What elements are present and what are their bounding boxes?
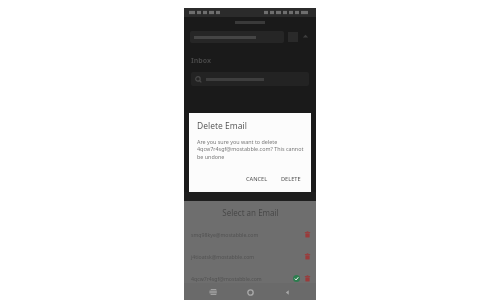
- staticText: Are you sure you want to delete 4qcw7r4s…: [197, 138, 304, 161]
- staticText: CANCEL: [246, 175, 268, 183]
- button[interactable]: Delete email: [304, 275, 311, 282]
- button[interactable]: 4qcw7r4sgf@mostabble.com: [184, 273, 316, 283]
- button[interactable]: Delete email: [304, 253, 311, 260]
- staticText: DELETE: [281, 175, 301, 183]
- button[interactable]: Back: [279, 284, 295, 300]
- button[interactable]: Selected: [293, 275, 300, 282]
- staticText: Delete Email: [197, 120, 247, 132]
- button[interactable]: Menu: [301, 32, 310, 41]
- staticText: Inbox: [191, 56, 211, 66]
- button[interactable]: Expand: [190, 30, 310, 43]
- button[interactable]: CANCEL: [243, 173, 271, 185]
- button[interactable]: [191, 72, 309, 86]
- staticText: Select an Email: [222, 207, 279, 218]
- button[interactable]: DELETE: [278, 173, 304, 185]
- staticText: smq98kye@mostabble.com: [191, 231, 293, 238]
- button[interactable]: Delete email: [304, 231, 311, 238]
- button[interactable]: Recent apps: [205, 284, 221, 300]
- staticText: 4qcw7r4sgf@mostabble.com: [191, 275, 293, 282]
- button[interactable]: j4tioatsk@mostabble.com: [184, 251, 316, 262]
- staticText: j4tioatsk@mostabble.com: [191, 253, 293, 260]
- button[interactable]: Home: [242, 284, 258, 300]
- button[interactable]: smq98kye@mostabble.com: [184, 229, 316, 240]
